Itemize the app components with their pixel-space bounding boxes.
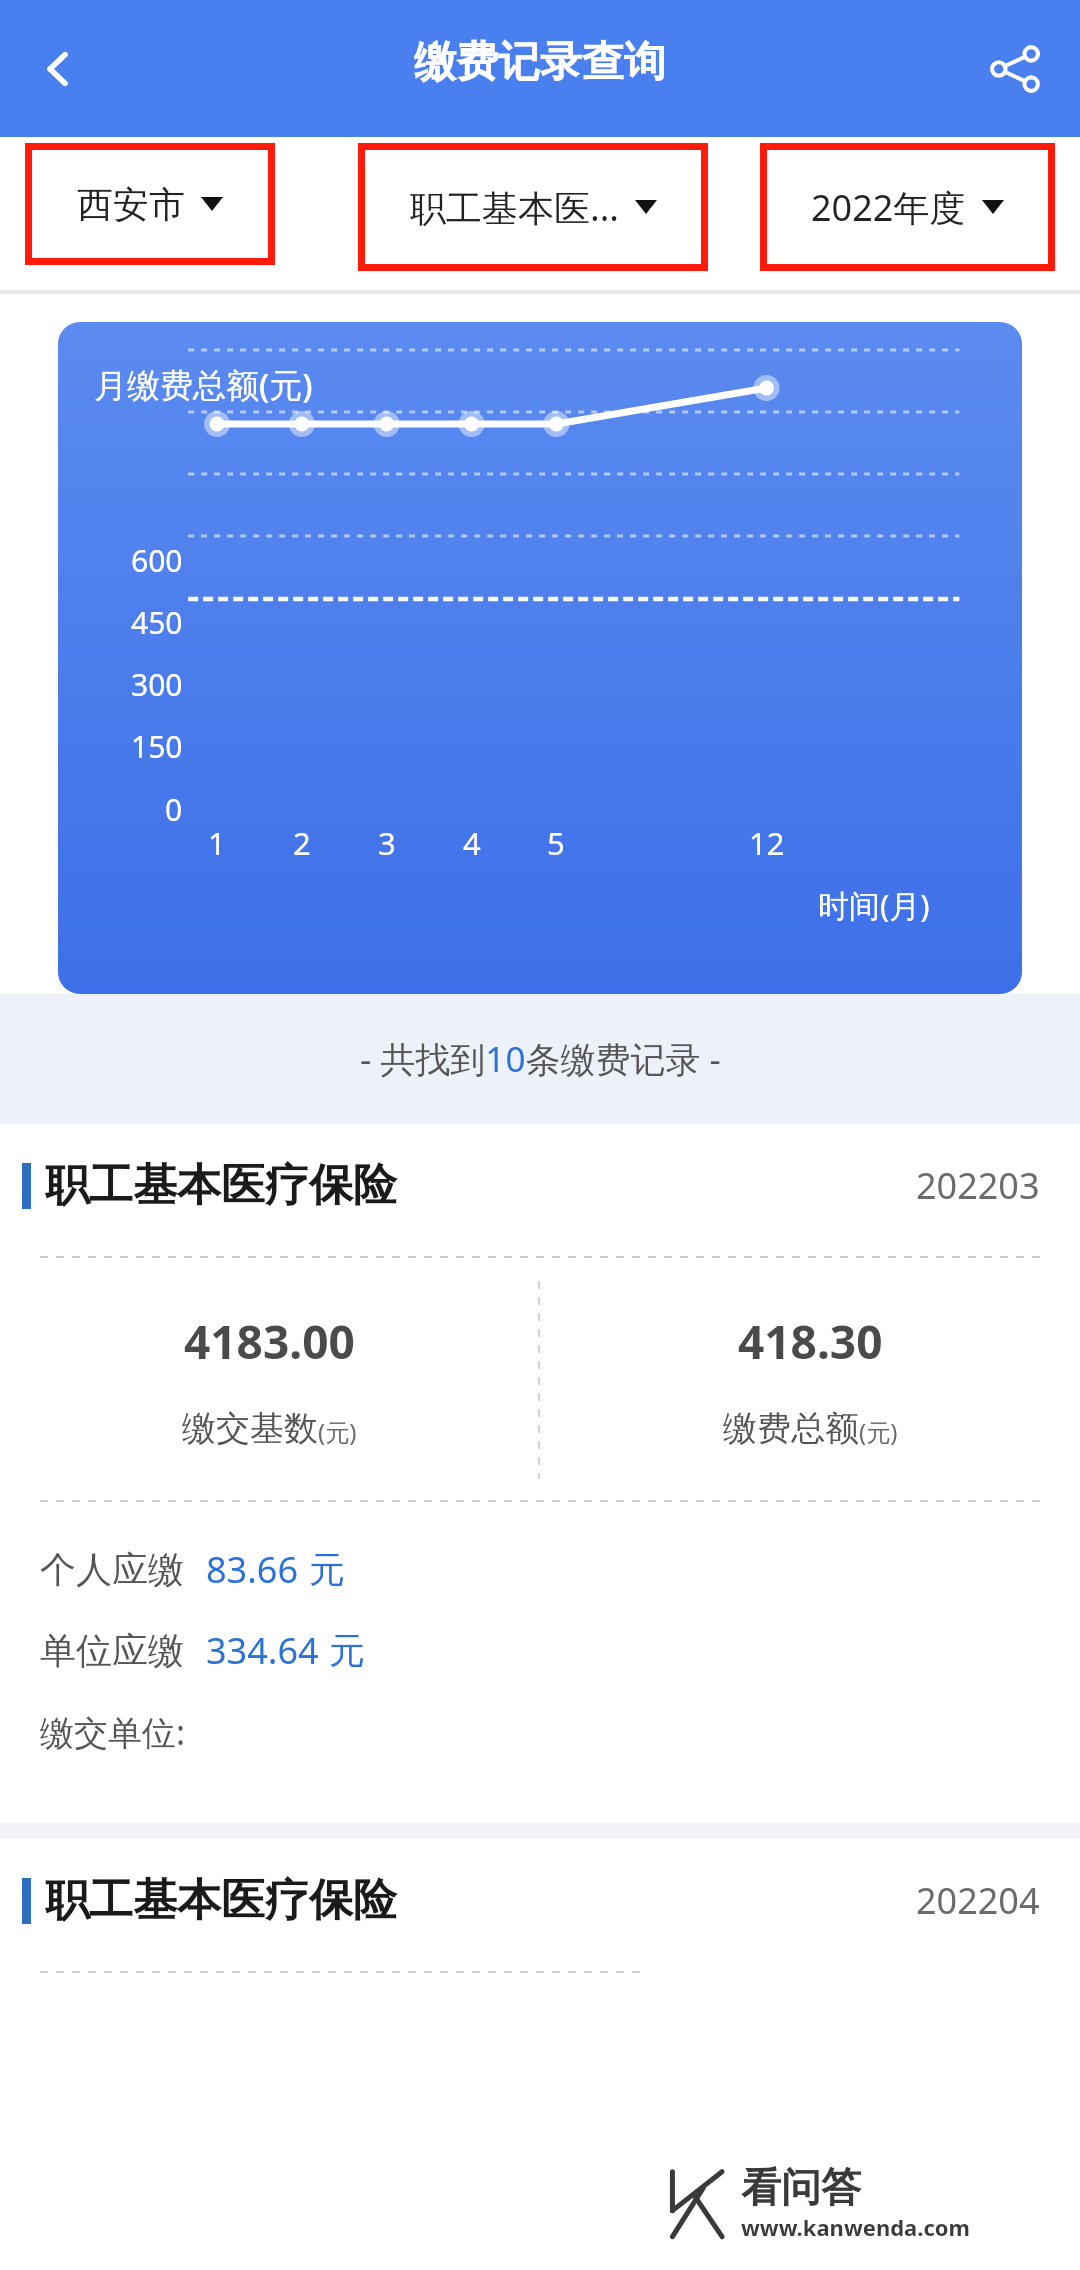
staticText: 2022年度 [811, 183, 966, 232]
button[interactable]: Share [972, 26, 1058, 112]
staticText: 西安市 [77, 182, 185, 227]
staticText: 12 [749, 822, 785, 864]
staticText: 334.64 [206, 1626, 319, 1675]
staticText: 202203 [916, 1161, 1040, 1210]
staticText: 5 [547, 822, 565, 864]
staticText: 时间(月) [818, 884, 930, 926]
staticText: 3 [378, 822, 396, 864]
staticText: (元) [859, 1415, 898, 1448]
staticText: 450 [131, 602, 183, 643]
staticText: 1 [208, 822, 226, 864]
staticText: 418.30 [738, 1310, 883, 1373]
button[interactable]: 职工基本医... [358, 143, 708, 271]
staticText: 2 [293, 822, 311, 864]
staticText: 300 [131, 664, 183, 705]
staticText: 职工基本医疗保险 [45, 1158, 397, 1213]
staticText: 4 [463, 822, 481, 864]
staticText: 元 [329, 1628, 365, 1673]
button[interactable]: 月缴费总额(元) [58, 322, 1022, 994]
button[interactable]: 西安市 [25, 143, 275, 265]
staticText: 元 [309, 1547, 345, 1592]
staticText: 职工基本医... [410, 183, 619, 232]
button[interactable]: Back [18, 29, 98, 109]
staticText: www.kanwenda.com [741, 2212, 970, 2242]
staticText: - 共找到10条缴费记录 - [360, 1035, 721, 1083]
staticText: 202204 [916, 1876, 1040, 1925]
staticText: 缴费记录查询 [414, 36, 666, 89]
staticText: 缴交基数 [182, 1407, 318, 1450]
staticText: 看问答 [741, 2162, 861, 2212]
staticText: 职工基本医疗保险 [45, 1873, 397, 1928]
staticText: 0 [165, 789, 183, 830]
staticText: 600 [131, 540, 183, 581]
staticText: 150 [131, 726, 183, 767]
staticText: 月缴费总额(元) [94, 362, 313, 407]
button[interactable]: 职工基本医疗保险 [0, 1124, 1080, 1823]
button[interactable]: 职工基本医疗保险 [0, 1839, 1080, 1974]
button[interactable]: 2022年度 [760, 143, 1055, 271]
staticText: 单位应缴 [40, 1628, 184, 1673]
staticText: 缴交单位: [40, 1709, 186, 1755]
staticText: 缴费总额 [723, 1407, 859, 1450]
staticText: 4183.00 [184, 1310, 355, 1373]
staticText: (元) [318, 1415, 357, 1448]
staticText: 个人应缴 [40, 1547, 184, 1592]
staticText: 83.66 [206, 1545, 299, 1594]
